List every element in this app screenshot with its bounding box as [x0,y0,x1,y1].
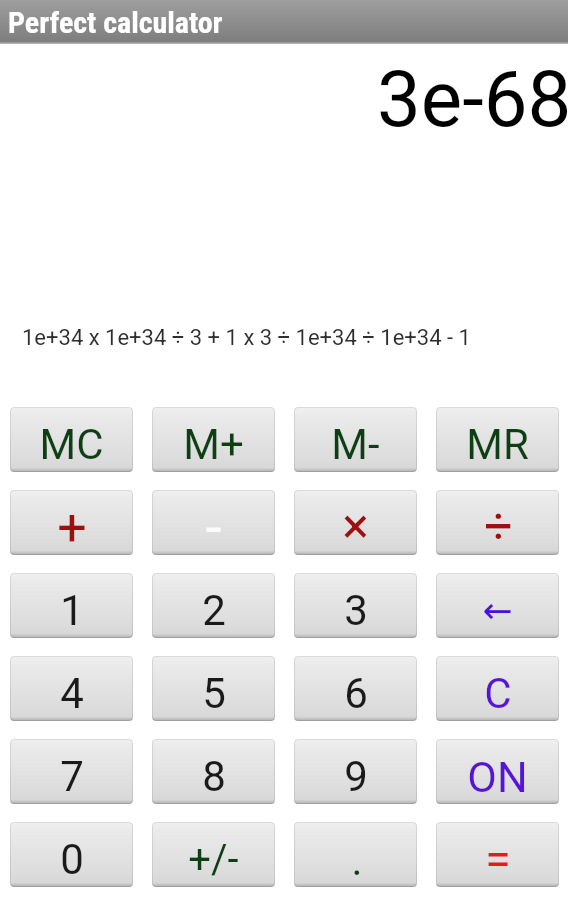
staticText: × [342,497,369,555]
staticText: M- [331,420,380,469]
button[interactable]: M+ [152,407,275,472]
button[interactable]: 0 [10,822,133,887]
staticText: C [484,669,512,718]
staticText: 5 [202,669,226,718]
staticText: 8 [202,752,226,801]
staticText: 3 [344,586,368,635]
button[interactable]: Decimal point [294,822,417,887]
button[interactable]: Equals [436,822,559,887]
staticText: . [351,836,363,885]
button[interactable]: C [436,656,559,721]
button[interactable]: Plus minus [152,822,275,887]
button[interactable]: Plus [10,490,133,555]
button[interactable]: MC [10,407,133,472]
staticText: M+ [183,420,244,469]
button[interactable]: Divide [436,490,559,555]
button[interactable]: ON [436,739,559,804]
button[interactable]: 8 [152,739,275,804]
staticText: - [205,493,222,555]
button[interactable]: 2 [152,573,275,638]
button[interactable]: 5 [152,656,275,721]
staticText: 7 [60,752,84,801]
button[interactable]: 1 [10,573,133,638]
button[interactable]: M- [294,407,417,472]
staticText: + [57,497,87,555]
staticText: 9 [344,752,368,801]
button[interactable]: Backspace [436,573,559,638]
button[interactable]: 7 [10,739,133,804]
staticText: ← [482,590,513,632]
button[interactable]: 6 [294,656,417,721]
staticText: MC [39,420,104,469]
staticText: MR [466,420,529,469]
staticText: 2 [202,586,226,635]
button[interactable]: Multiply [294,490,417,555]
button[interactable]: 4 [10,656,133,721]
staticText: 3e-68 [377,54,568,144]
staticText: ÷ [484,497,513,555]
staticText: Perfect calculator [8,5,223,40]
staticText: +/- [188,836,239,883]
staticText: 0 [60,835,84,884]
staticText: ON [467,752,528,802]
button[interactable]: Minus [152,490,275,555]
button[interactable]: 3 [294,573,417,638]
staticText: 1e+34 x 1e+34 ÷ 3 + 1 x 3 ÷ 1e+34 ÷ 1e+3… [22,325,471,351]
staticText: = [485,831,511,886]
staticText: 1 [60,586,84,635]
button[interactable]: 9 [294,739,417,804]
staticText: 4 [60,669,84,718]
button[interactable]: MR [436,407,559,472]
staticText: 6 [344,669,368,718]
